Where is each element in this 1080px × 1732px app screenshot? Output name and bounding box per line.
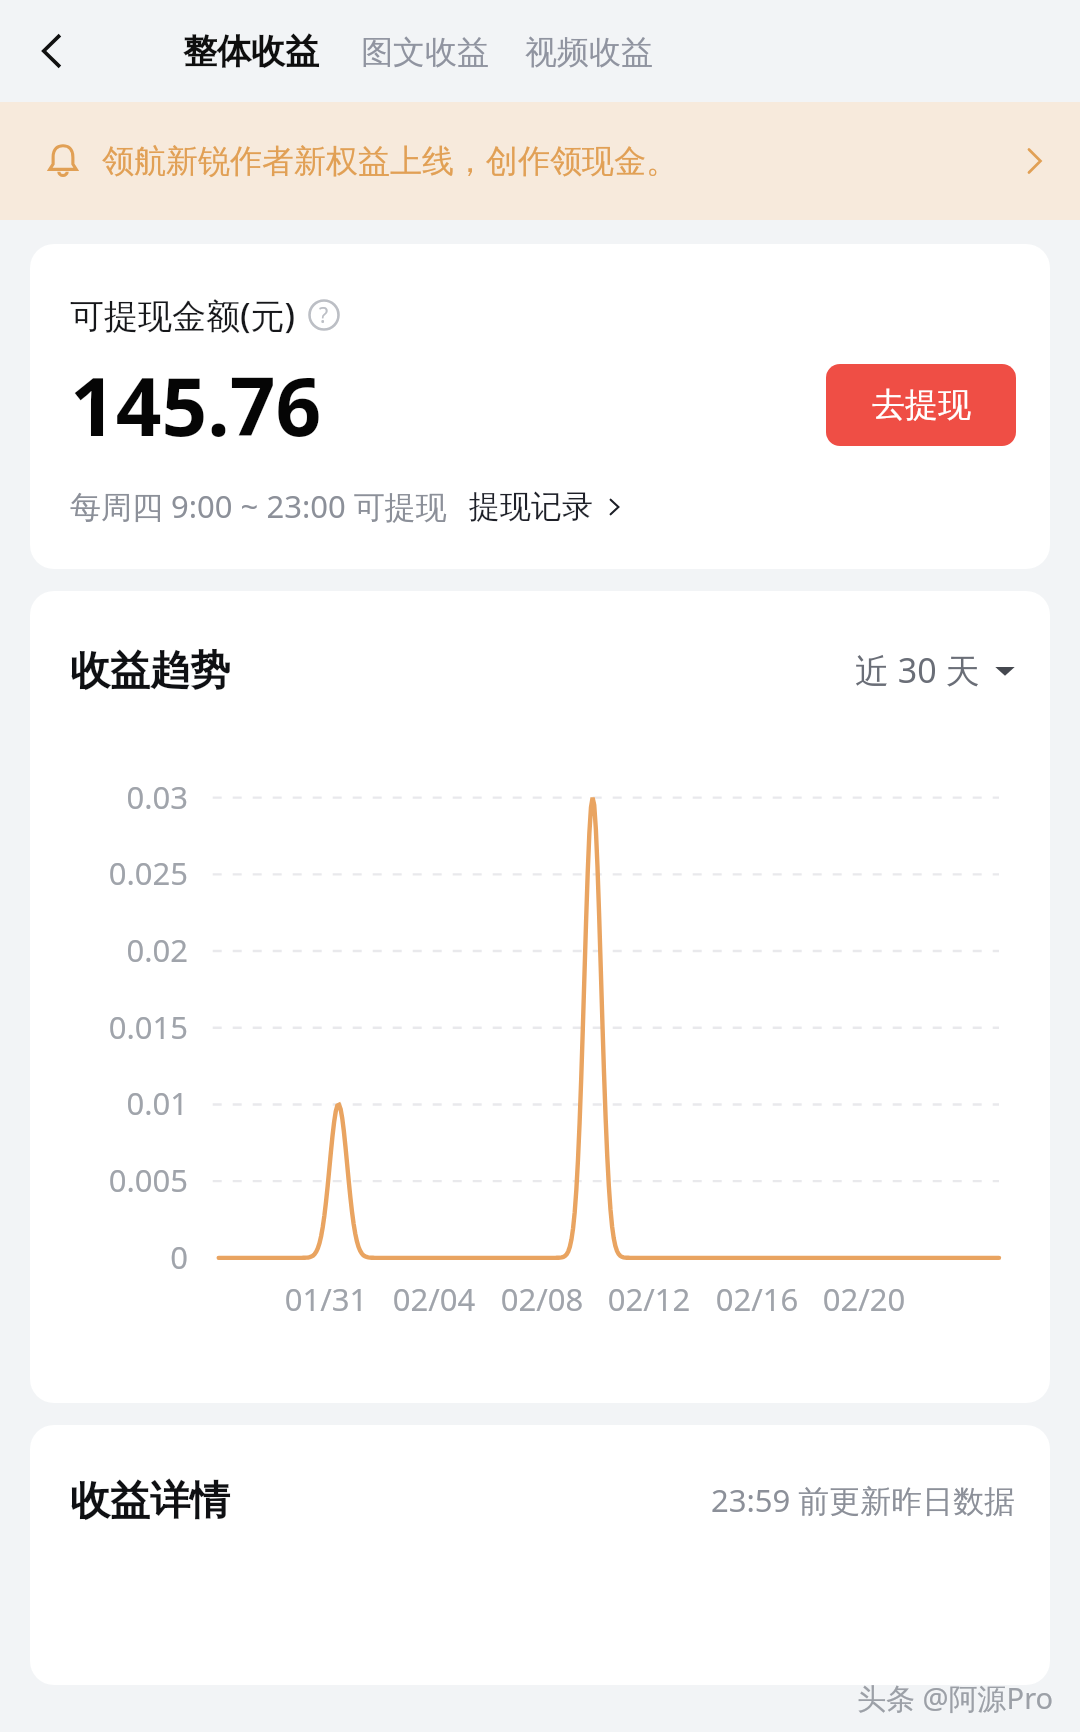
button[interactable]: 近 30 天 — [855, 647, 1016, 693]
staticText: 提现记录 — [469, 487, 593, 526]
button[interactable]: 提现记录 — [469, 487, 627, 526]
button[interactable]: 去提现 — [826, 364, 1016, 446]
staticText: 02/04 — [379, 1278, 489, 1320]
staticText: 23:59 前更新昨日数据 — [711, 1479, 1016, 1521]
button[interactable]: 帮助 — [308, 299, 340, 331]
staticText: 视频收益 — [525, 32, 653, 72]
staticText: 可提现金额(元) — [70, 292, 296, 338]
button[interactable]: 视频收益 — [522, 32, 656, 72]
staticText: 02/16 — [702, 1278, 812, 1320]
staticText: 0 — [30, 1236, 188, 1278]
staticText: 02/08 — [487, 1278, 597, 1320]
button[interactable]: 可提现金额(元) — [30, 244, 1050, 569]
staticText: 去提现 — [872, 384, 971, 426]
staticText: 01/31 — [271, 1278, 381, 1320]
staticText: 领航新锐作者新权益上线，创作领现金。 — [102, 141, 678, 181]
staticText: 0.03 — [30, 776, 188, 818]
button[interactable]: 图文收益 — [358, 32, 492, 72]
staticText: 收益详情 — [70, 1475, 230, 1525]
staticText: 0.02 — [30, 929, 188, 971]
staticText: 图文收益 — [361, 32, 489, 72]
staticText: 头条 @阿源Pro — [857, 1678, 1054, 1718]
staticText: 0.025 — [30, 852, 188, 894]
staticText: ? — [319, 301, 329, 330]
button[interactable]: Back — [20, 19, 84, 83]
staticText: 整体收益 — [183, 30, 319, 73]
staticText: 0.01 — [30, 1082, 188, 1124]
staticText: 02/12 — [594, 1278, 704, 1320]
button[interactable]: 领航新锐作者新权益上线，创作领现金。 — [0, 102, 1080, 220]
staticText: 0.005 — [30, 1159, 188, 1201]
staticText: 145.76 — [70, 350, 322, 459]
staticText: 每周四 9:00 ~ 23:00 可提现 — [70, 485, 447, 527]
button[interactable]: 整体收益 — [180, 30, 322, 73]
staticText: 近 30 天 — [855, 647, 980, 693]
button[interactable]: 收益详情 — [30, 1425, 1050, 1685]
staticText: 收益趋势 — [70, 645, 230, 695]
staticText: 02/20 — [809, 1278, 919, 1320]
staticText: 0.015 — [30, 1006, 188, 1048]
